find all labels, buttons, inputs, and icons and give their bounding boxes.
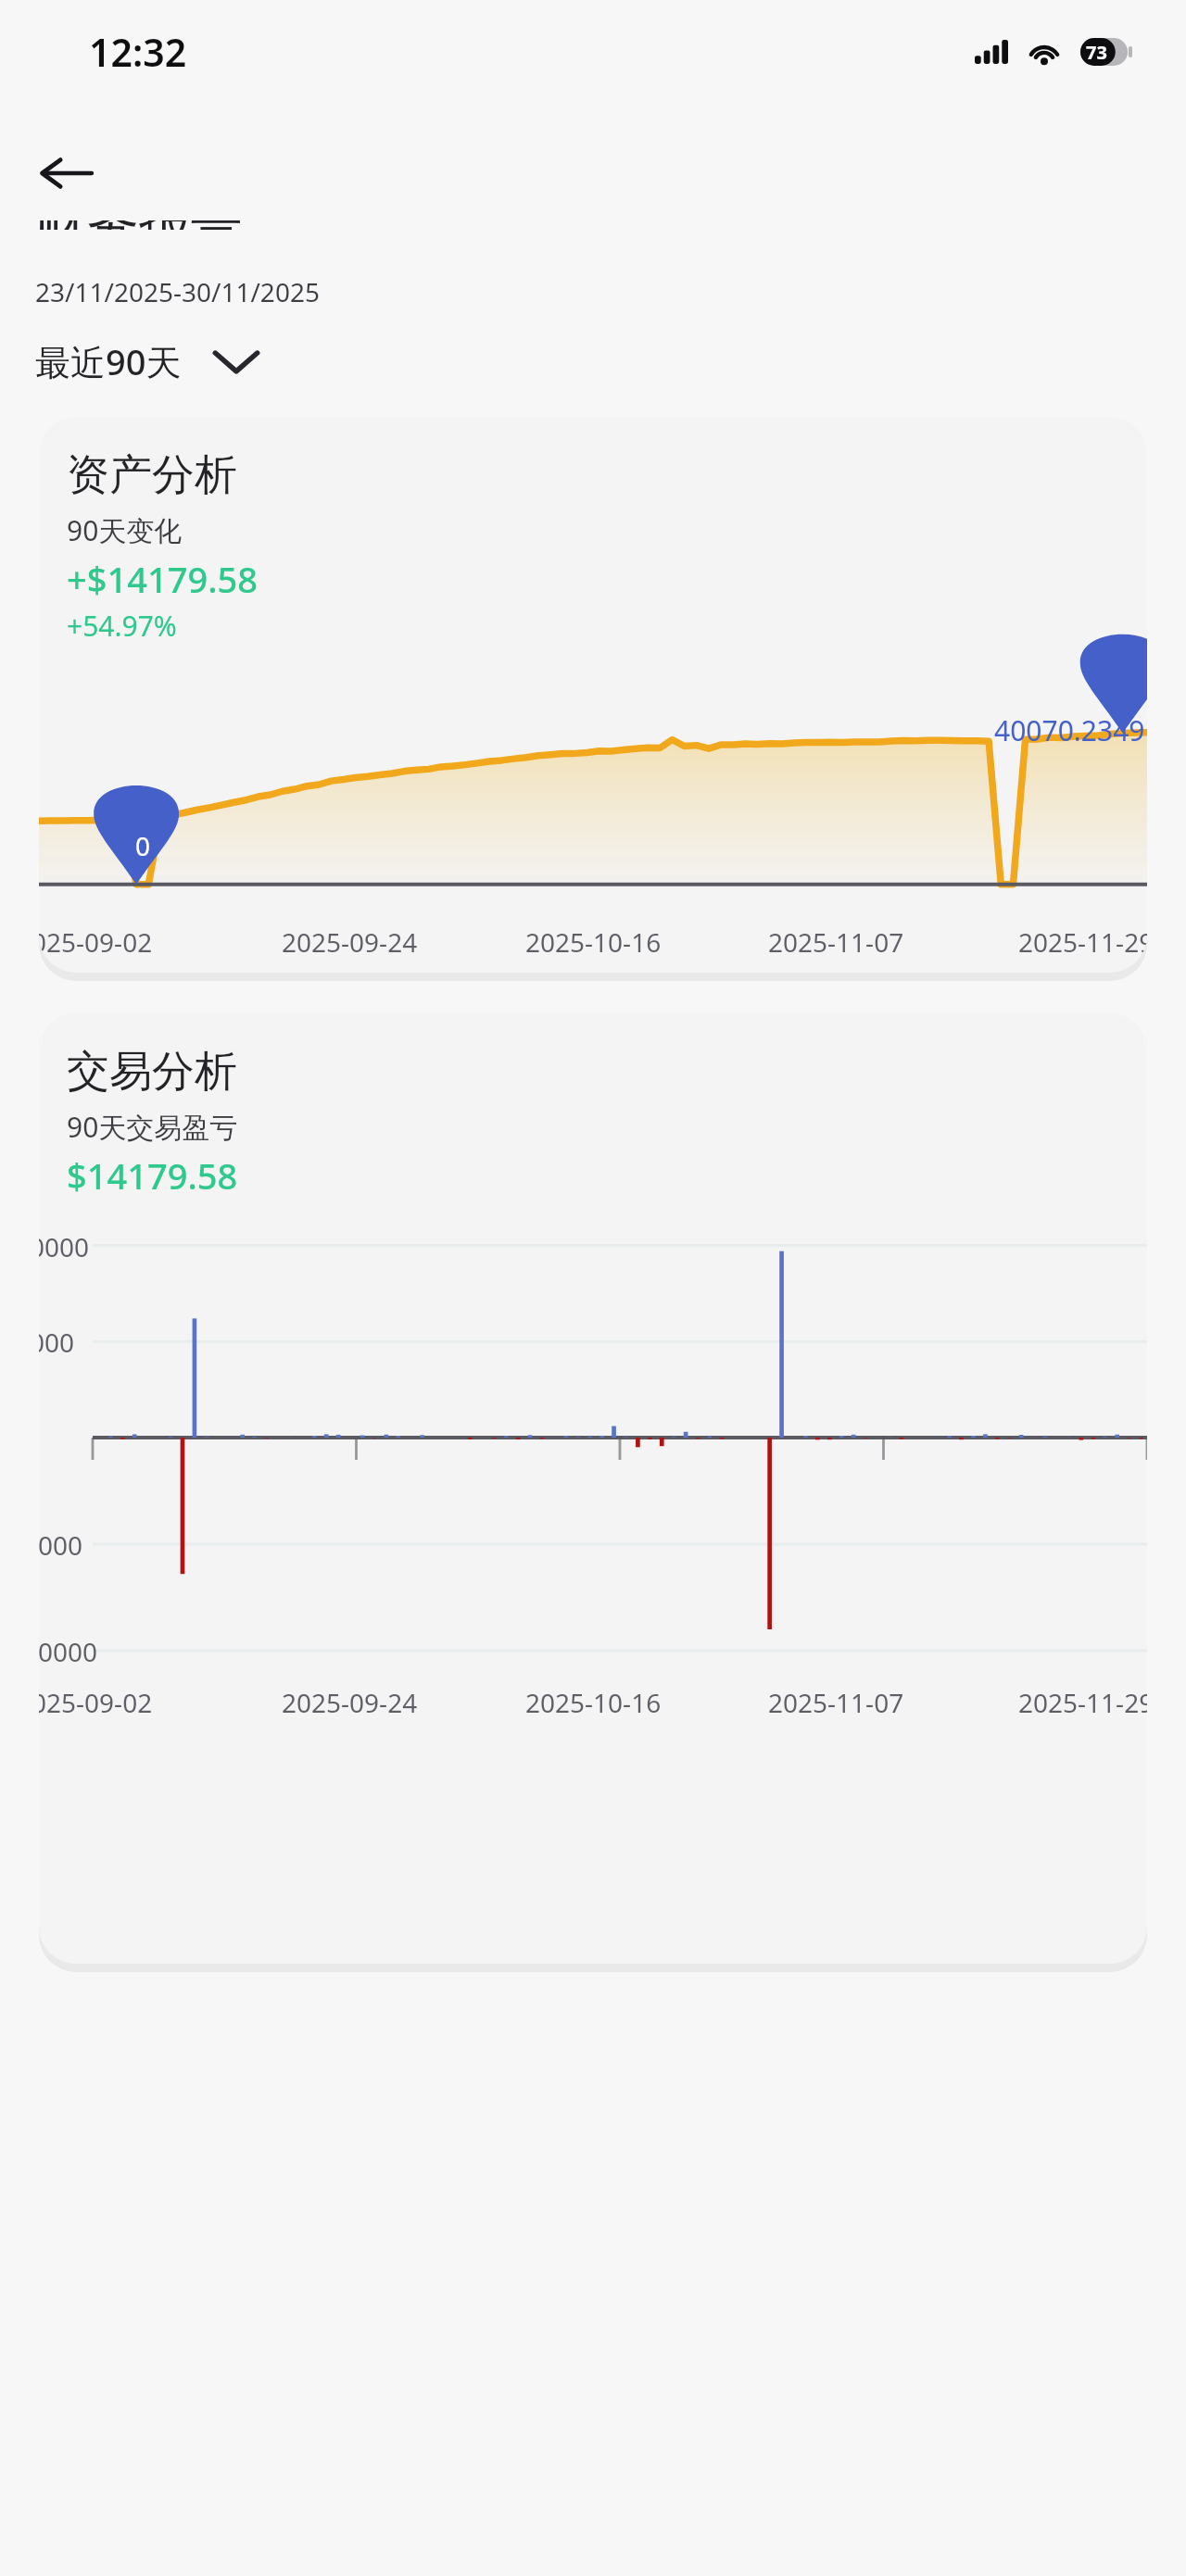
staticText: 财务报告 (35, 220, 243, 230)
staticText: 90天变化 (67, 511, 183, 549)
staticText: 5000 (39, 1325, 75, 1360)
staticText: 2025-11-29 (1018, 1685, 1147, 1720)
staticText: 2025-10-16 (525, 1685, 662, 1720)
staticText: $14179.58 (67, 1151, 238, 1200)
button[interactable]: Back (22, 130, 109, 217)
staticText: 90天交易盈亏 (67, 1108, 238, 1146)
staticText: 2025-11-07 (768, 1685, 904, 1720)
button[interactable]: 资产分析 (39, 417, 1147, 973)
staticText: +$14179.58 (67, 555, 258, 603)
staticText: +54.97% (67, 607, 177, 645)
staticText: 10000 (39, 1229, 90, 1264)
button[interactable]: 交易分析 (39, 1013, 1147, 1964)
staticText: 2025-09-24 (282, 1685, 418, 1720)
staticText: 2025-09-02 (39, 1685, 153, 1720)
staticText: 73 (1086, 40, 1107, 65)
staticText: 40070.2349 (994, 711, 1145, 749)
staticText: 最近90天 (35, 337, 182, 385)
staticText: 2025-09-24 (282, 924, 418, 960)
staticText: -5000 (39, 1527, 83, 1563)
staticText: 2025-11-07 (768, 924, 904, 960)
staticText: 资产分析 (67, 448, 237, 502)
staticText: 2025-10-16 (525, 924, 662, 960)
staticText: 0 (135, 828, 151, 863)
staticText: -10000 (39, 1634, 98, 1669)
staticText: 2025-09-02 (39, 924, 153, 960)
staticText: 2025-11-29 (1018, 924, 1147, 960)
button[interactable]: 最近90天 (35, 333, 280, 389)
staticText: 12:32 (89, 26, 187, 78)
staticText: 23/11/2025-30/11/2025 (35, 274, 320, 309)
staticText: 交易分析 (67, 1045, 237, 1099)
